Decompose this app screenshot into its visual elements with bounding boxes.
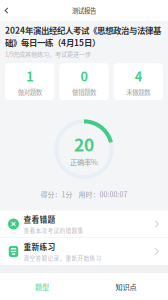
- staticText: 重新练习: [23, 241, 55, 252]
- staticText: 做错题数: [72, 87, 96, 96]
- staticText: 4: [135, 67, 142, 85]
- staticText: 20: [74, 131, 94, 156]
- staticText: 得分：1分 用时：00:00:07: [40, 189, 127, 199]
- button[interactable]: 题型: [0, 273, 84, 300]
- staticText: 清空答题记录，重新开始练习: [23, 254, 101, 262]
- button[interactable]: 知识点: [84, 273, 168, 300]
- staticText: 查看错题: [23, 214, 55, 225]
- staticText: 未做题数: [126, 87, 150, 96]
- staticText: 查看本次考试的错题集: [23, 226, 83, 234]
- staticText: 做对题数: [18, 87, 42, 96]
- staticText: 1: [26, 67, 33, 85]
- staticText: 2024年演出经纪人考试《思想政治与法律基础》每日一练（4月15日）: [5, 24, 161, 48]
- staticText: 测试报告: [72, 6, 96, 15]
- button[interactable]: Back: [0, 0, 13, 21]
- staticText: 1/5完成其他练习，考试更进一步: [5, 49, 91, 58]
- staticText: 0: [80, 67, 87, 85]
- staticText: 知识点: [115, 281, 136, 292]
- staticText: 正确率%: [70, 156, 98, 167]
- button[interactable]: 查看错题: [0, 210, 168, 237]
- staticText: 题型: [35, 281, 49, 292]
- button[interactable]: 重新练习: [0, 238, 168, 265]
